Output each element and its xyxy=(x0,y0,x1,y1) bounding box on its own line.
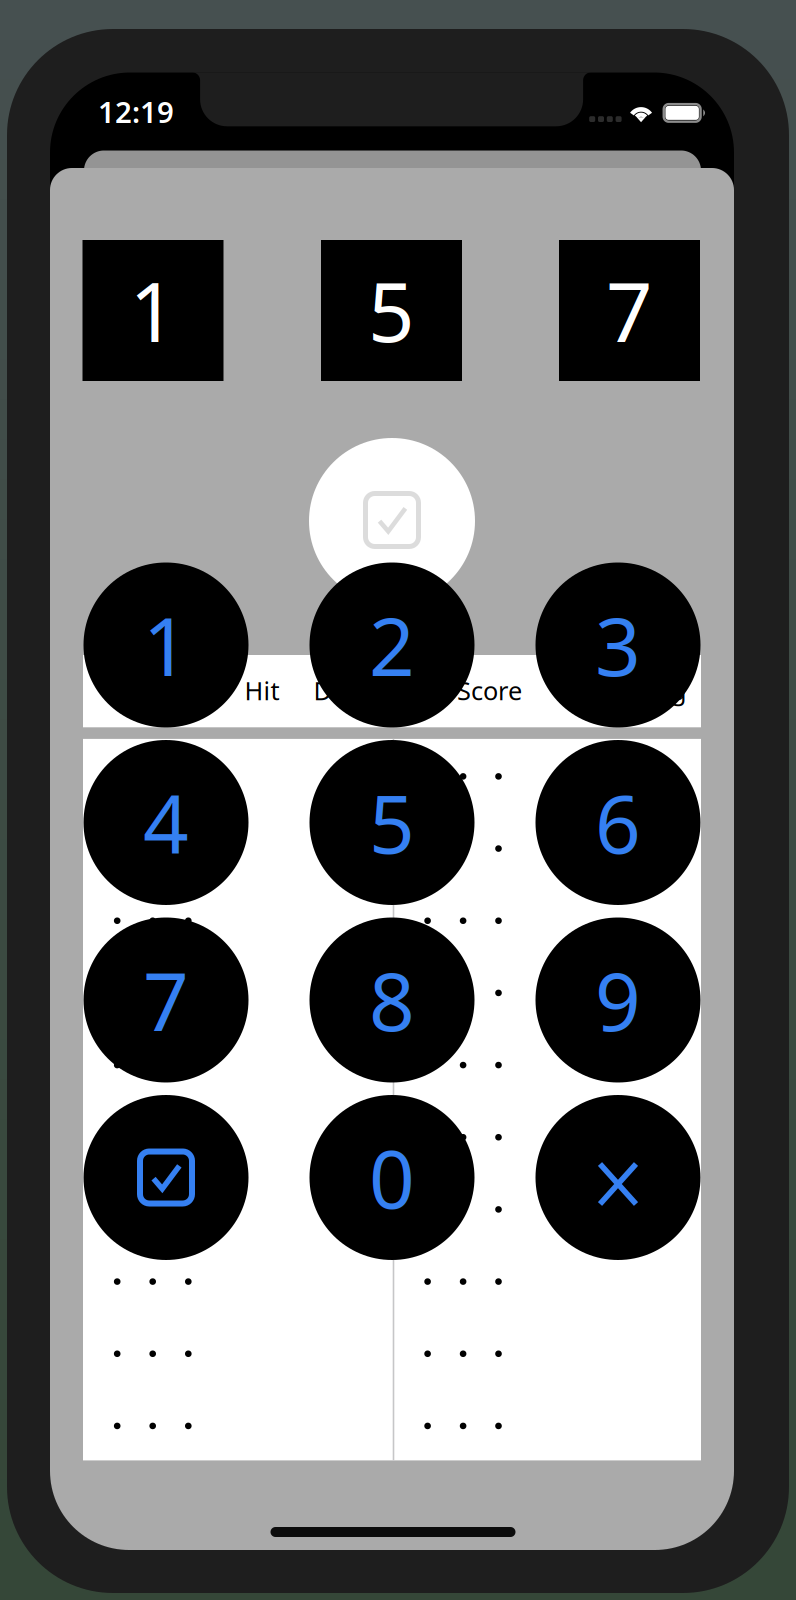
staticText: 3 xyxy=(595,592,641,698)
button[interactable]: Delete xyxy=(535,1095,700,1260)
staticText: 5 xyxy=(369,769,415,876)
staticText: Hit xyxy=(244,674,279,707)
staticText: 7 xyxy=(606,256,653,364)
staticText: 12:19 xyxy=(98,92,174,131)
staticText: Darts xyxy=(313,674,376,707)
staticText: 8 xyxy=(369,947,415,1053)
button[interactable]: 2 xyxy=(309,562,474,727)
staticText: 4 xyxy=(143,769,189,876)
button[interactable]: 3 xyxy=(535,562,700,727)
staticText: Avg xyxy=(642,674,687,707)
staticText: 1 xyxy=(143,592,189,698)
button[interactable]: 4 xyxy=(83,740,248,905)
staticText: 7 xyxy=(143,947,189,1053)
staticText: 0 xyxy=(369,1124,415,1231)
button[interactable]: 7 xyxy=(559,240,700,381)
staticText: 6 xyxy=(595,769,641,876)
button[interactable]: 1 xyxy=(83,562,248,727)
button[interactable]: 6 xyxy=(535,740,700,905)
staticText: 2 xyxy=(369,592,415,698)
button[interactable]: 1 xyxy=(82,240,223,381)
button[interactable]: 5 xyxy=(309,740,474,905)
button[interactable]: 9 xyxy=(535,917,700,1082)
staticText: 9 xyxy=(595,947,641,1053)
staticText: 5 xyxy=(368,256,415,364)
button[interactable]: Enter score xyxy=(83,1095,248,1260)
staticText: 1 xyxy=(129,256,176,364)
button[interactable]: 0 xyxy=(309,1095,474,1260)
button[interactable]: 7 xyxy=(83,917,248,1082)
staticText: Score xyxy=(457,674,522,707)
button[interactable]: 8 xyxy=(309,917,474,1082)
button[interactable]: 5 xyxy=(321,240,462,381)
